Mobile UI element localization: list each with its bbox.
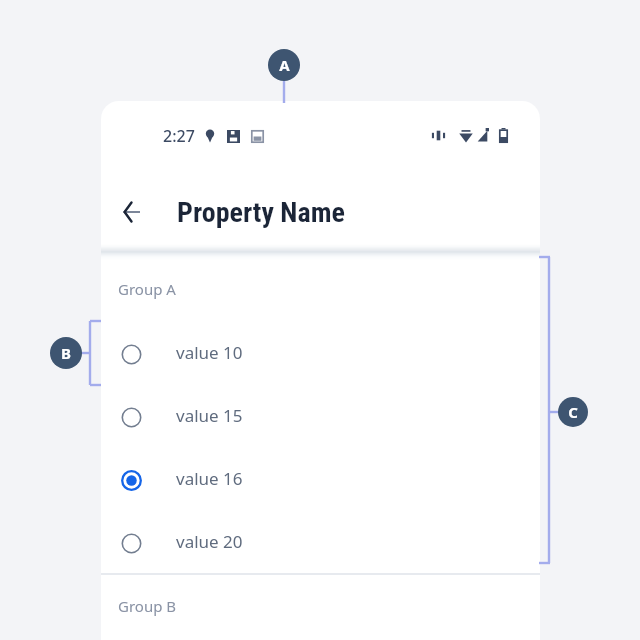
button[interactable]: value 16 (101, 449, 540, 511)
staticText: value 10 (176, 341, 243, 364)
staticText: value 20 (176, 530, 243, 553)
button[interactable]: value 20 (101, 512, 540, 574)
staticText: Group B (118, 596, 177, 616)
staticText: value 15 (176, 404, 243, 427)
button[interactable]: B (50, 337, 82, 369)
staticText: C (568, 402, 578, 422)
staticText: A (279, 55, 290, 75)
button[interactable]: A (268, 49, 300, 81)
button[interactable]: C (558, 397, 588, 427)
button[interactable]: value 15 (101, 386, 540, 448)
staticText: Group A (118, 279, 176, 299)
staticText: 2:27 (163, 125, 195, 147)
button[interactable]: value 10 (101, 323, 540, 385)
staticText: B (61, 343, 71, 363)
button[interactable]: Back (112, 193, 150, 231)
staticText: value 16 (176, 467, 243, 490)
staticText: Property Name (177, 196, 345, 229)
